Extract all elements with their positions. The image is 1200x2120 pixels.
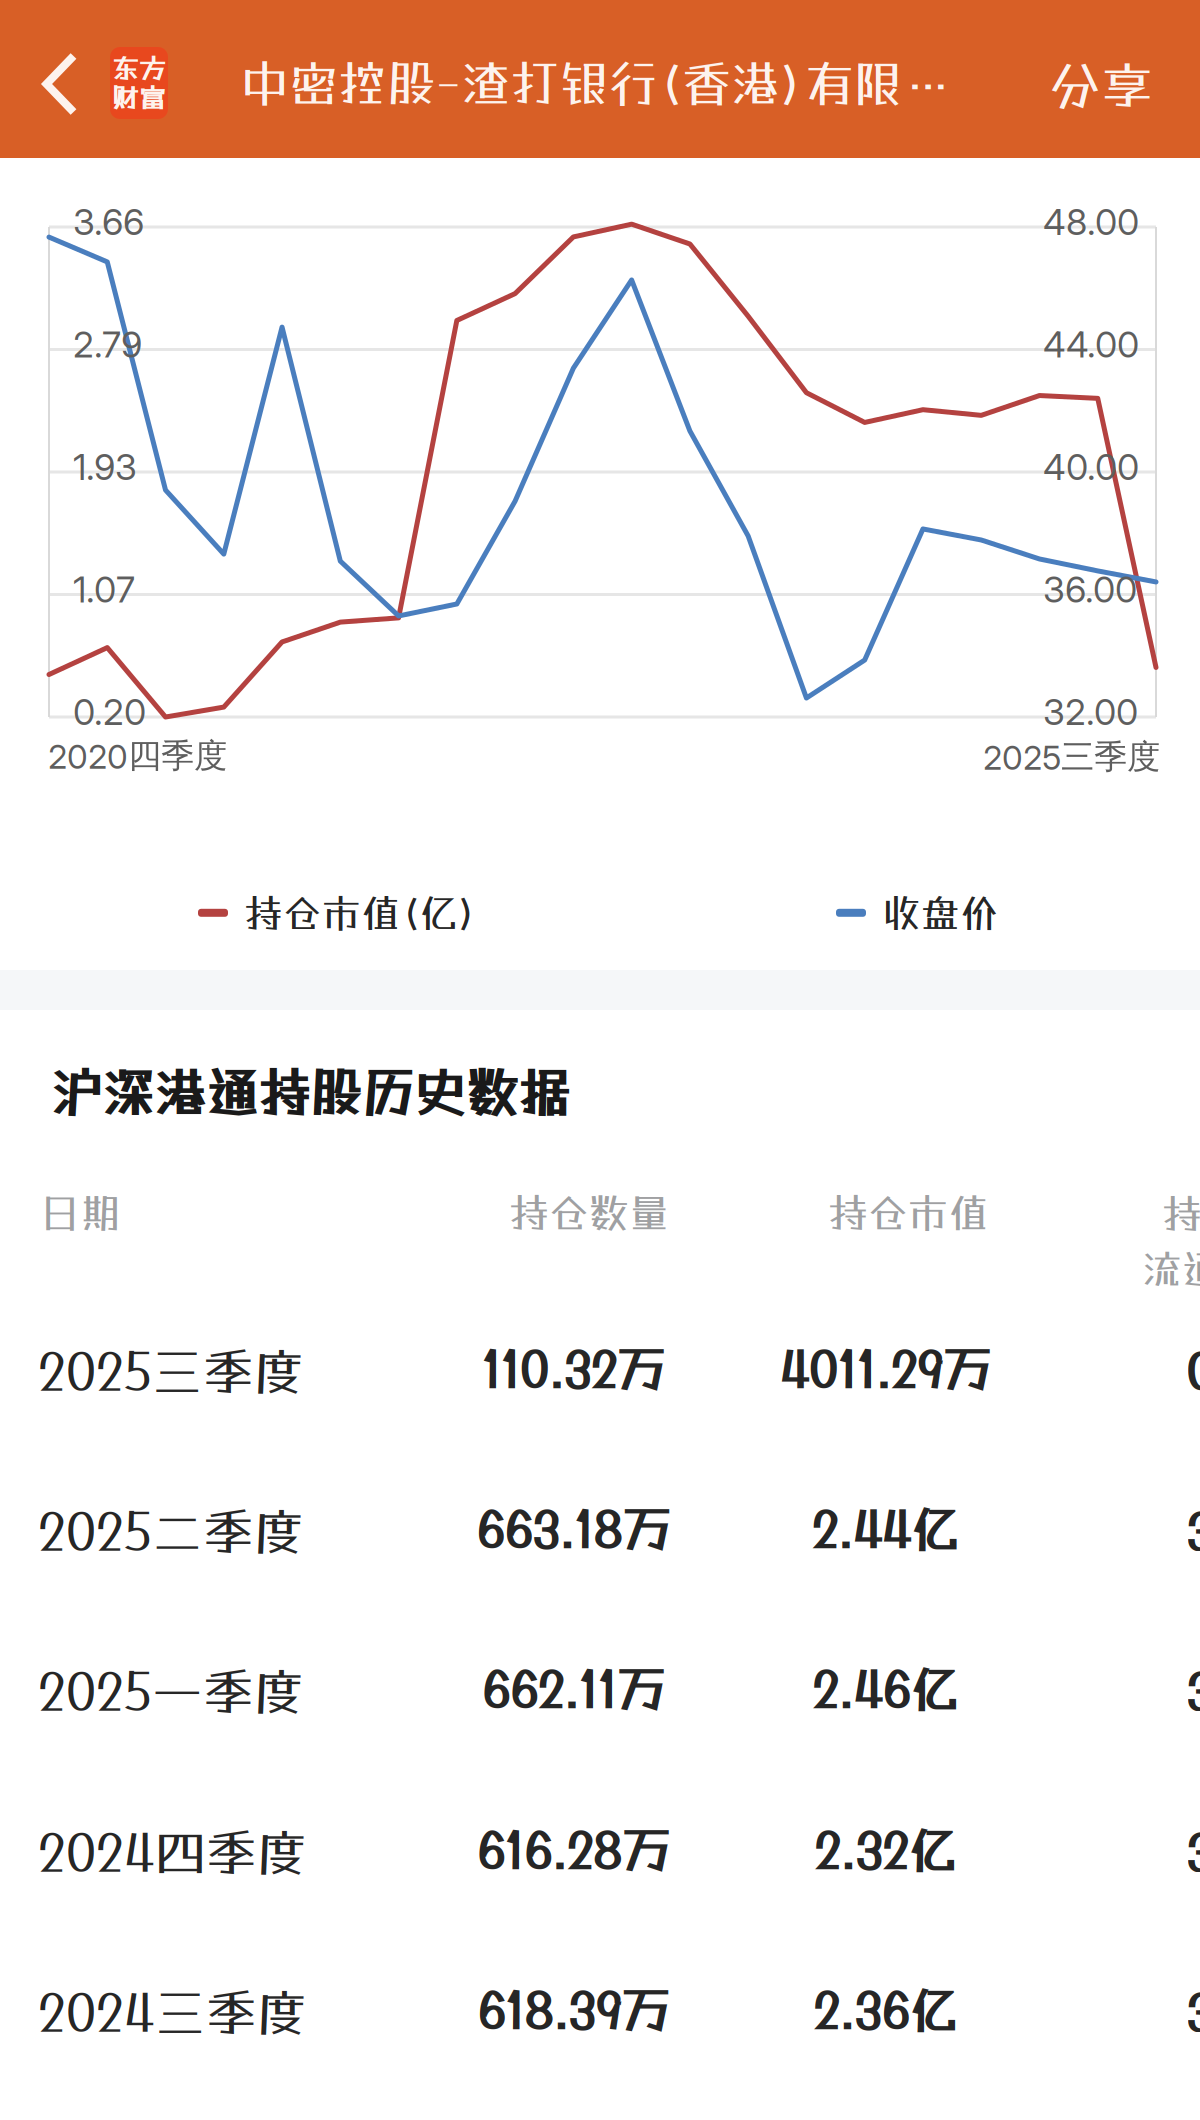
staticText: 收盘价 <box>882 890 999 936</box>
staticText: 1.93 <box>73 445 137 489</box>
staticText: 财富 <box>112 82 166 113</box>
staticText: 2024三季度 <box>38 1982 308 2042</box>
staticText: 2025二季度 <box>38 1501 305 1561</box>
staticText: 616.28万 <box>476 1822 669 1879</box>
button[interactable]: 2025三季度 <box>0 1292 1200 1452</box>
staticText: 2.36亿 <box>813 1982 957 2039</box>
staticText: 3.66 <box>73 200 144 244</box>
staticText: 2025三季度 <box>38 1341 305 1401</box>
button[interactable]: 分享 <box>1026 6 1176 164</box>
staticText: 2025三季度 <box>983 736 1160 778</box>
staticText: 0 <box>1186 1343 1200 1400</box>
staticText: 2.79 <box>73 322 142 366</box>
staticText: 3 <box>1186 1503 1200 1560</box>
staticText: 2.44亿 <box>811 1501 958 1558</box>
staticText: 110.32万 <box>481 1341 664 1398</box>
staticText: 3 <box>1186 1984 1200 2041</box>
staticText: 沪深港通持股历史数据 <box>50 1062 570 1123</box>
staticText: 2024四季度 <box>38 1822 308 1882</box>
button[interactable]: 2025二季度 <box>0 1452 1200 1612</box>
staticText: 4011.29万 <box>779 1341 990 1398</box>
button[interactable]: 2024四季度 <box>0 1773 1200 1933</box>
staticText: 36.00 <box>1043 567 1137 611</box>
staticText: 东方 <box>112 52 166 84</box>
staticText: 1.07 <box>73 567 135 611</box>
staticText: 32.00 <box>1043 690 1138 734</box>
staticText: 44.00 <box>1043 322 1139 366</box>
staticText: 40.00 <box>1043 445 1139 489</box>
staticText: 3 <box>1186 1824 1200 1881</box>
staticText: 持仓市值(亿) <box>244 890 477 936</box>
staticText: 中密控股-渣打银行(香港)有限… <box>240 54 952 112</box>
staticText: 分享 <box>1049 54 1153 116</box>
staticText: 662.11万 <box>481 1661 664 1718</box>
staticText: 2025一季度 <box>38 1661 305 1721</box>
staticText: 618.39万 <box>477 1982 669 2039</box>
staticText: 持仓数量 <box>509 1189 669 1236</box>
staticText: 流通 <box>1142 1245 1200 1292</box>
staticText: 持仓市值 <box>828 1189 988 1236</box>
staticText: 2.46亿 <box>812 1661 958 1718</box>
staticText: 48.00 <box>1043 200 1139 244</box>
staticText: 663.18万 <box>476 1501 670 1558</box>
staticText: 0.20 <box>73 690 146 734</box>
staticText: 持 <box>1162 1190 1200 1237</box>
staticText: 2.32亿 <box>814 1822 956 1879</box>
staticText: 日期 <box>40 1189 120 1236</box>
button[interactable]: 2025一季度 <box>0 1612 1200 1772</box>
staticText: 2020四季度 <box>48 735 227 777</box>
button[interactable]: Back <box>0 0 108 158</box>
staticText: 3 <box>1186 1663 1200 1720</box>
button[interactable]: 2024三季度 <box>0 1933 1200 2093</box>
